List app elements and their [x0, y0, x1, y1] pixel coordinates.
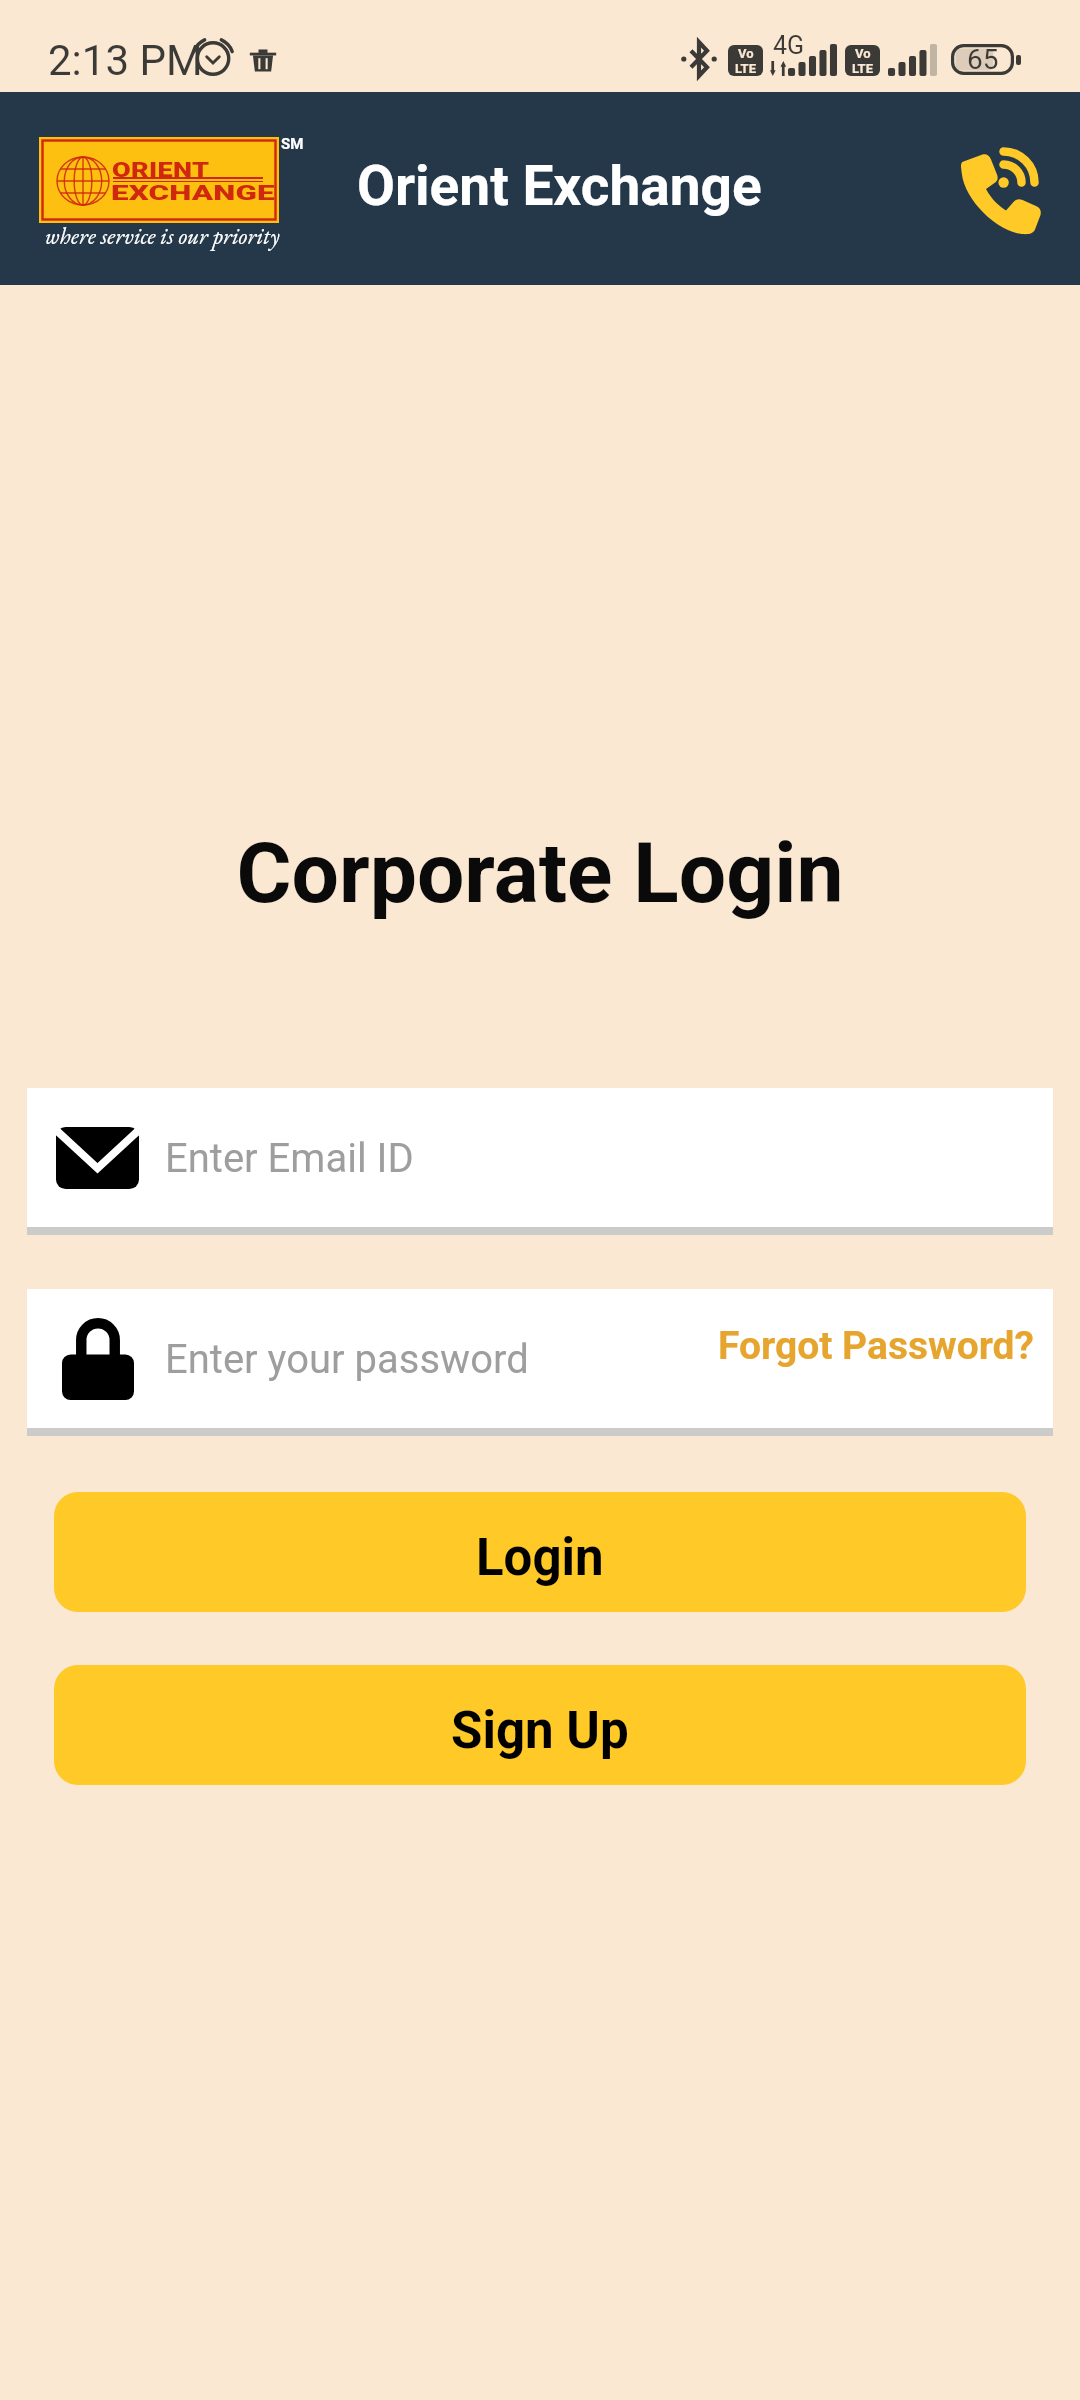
staticText: EXCHANGE: [111, 181, 275, 205]
button[interactable]: Enter Email ID: [27, 1088, 1053, 1227]
button[interactable]: Enter your password: [27, 1289, 1053, 1428]
staticText: Enter your password: [165, 1336, 529, 1383]
staticText: where service is our priority: [45, 221, 280, 251]
staticText: Vo: [855, 46, 871, 61]
staticText: Forgot Password?: [718, 1323, 1034, 1369]
staticText: LTE: [735, 61, 756, 76]
button[interactable]: Orient Exchange home: [39, 137, 339, 267]
staticText: Corporate Login: [0, 824, 1080, 922]
button[interactable]: Forgot Password?: [718, 1315, 1034, 1377]
staticText: Sign Up: [451, 1701, 629, 1761]
button[interactable]: Login: [54, 1492, 1026, 1612]
staticText: ORIENT: [112, 158, 210, 181]
staticText: Login: [476, 1528, 604, 1588]
staticText: 4G: [773, 31, 805, 60]
staticText: 65: [967, 43, 999, 74]
button[interactable]: Sign Up: [54, 1665, 1026, 1785]
staticText: Vo: [738, 46, 754, 61]
staticText: LTE: [852, 61, 873, 76]
staticText: Enter Email ID: [165, 1135, 414, 1182]
button[interactable]: Call: [946, 130, 1058, 242]
staticText: 2:13 PM: [48, 36, 203, 85]
staticText: SM: [281, 135, 304, 153]
staticText: Orient Exchange: [357, 154, 762, 218]
